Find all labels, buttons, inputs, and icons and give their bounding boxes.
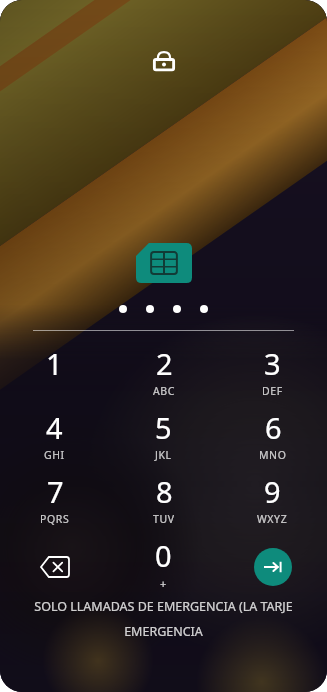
staticText: ABC [153, 384, 175, 398]
staticText: 1 [46, 344, 63, 383]
staticText: 7 [47, 472, 64, 511]
staticText: TUV [153, 512, 175, 526]
staticText: JKL [155, 448, 172, 462]
staticText: 6 [265, 408, 282, 447]
staticText: 3 [264, 344, 281, 383]
button[interactable]: 4 [0, 408, 109, 472]
staticText: EMERGENCIA [124, 623, 203, 640]
staticText: 5 [155, 408, 172, 447]
staticText: 0 [155, 536, 172, 575]
button[interactable]: 5 [109, 408, 218, 472]
staticText: 2 [156, 344, 173, 383]
button[interactable]: 6 [218, 408, 327, 472]
button[interactable]: 9 [218, 472, 327, 536]
staticText: 9 [264, 472, 281, 511]
staticText: SOLO LLAMADAS DE EMERGENCIA (LA TARJE [34, 598, 293, 615]
staticText: + [160, 576, 167, 591]
button[interactable]: Backspace [0, 536, 109, 598]
staticText: PQRS [40, 512, 70, 526]
staticText: 8 [156, 472, 173, 511]
staticText: 4 [46, 408, 63, 447]
button[interactable]: 7 [0, 472, 109, 536]
button[interactable]: 0 [109, 536, 218, 598]
button[interactable]: 1 [0, 344, 109, 408]
staticText: DEF [262, 384, 283, 398]
button[interactable]: Enter [254, 548, 292, 586]
button[interactable]: 3 [218, 344, 327, 408]
staticText: WXYZ [257, 512, 288, 526]
button[interactable]: 8 [109, 472, 218, 536]
button[interactable]: 2 [109, 344, 218, 408]
staticText: GHI [44, 448, 65, 462]
staticText: MNO [259, 448, 287, 462]
